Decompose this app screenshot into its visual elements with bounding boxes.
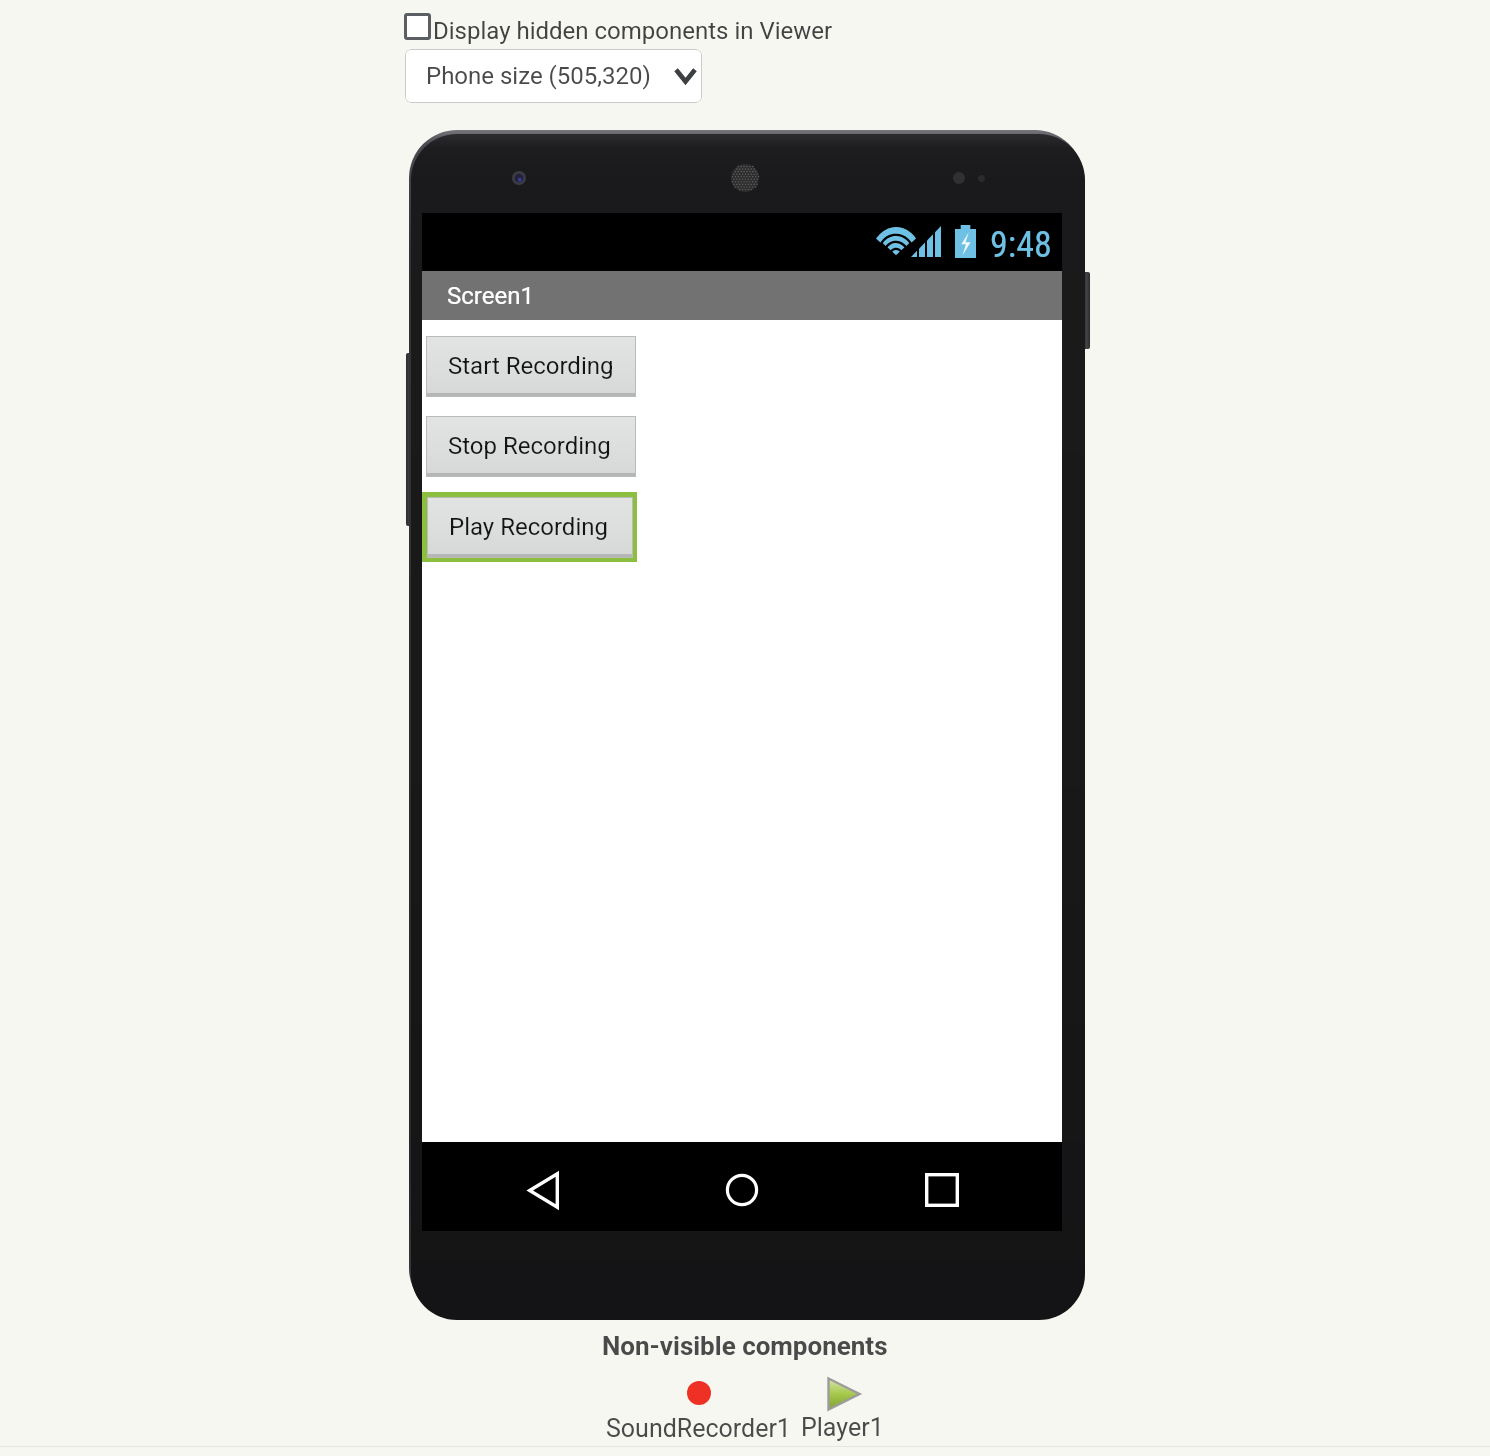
staticText: Player1	[801, 1413, 884, 1442]
button[interactable]: Back	[518, 1165, 568, 1215]
button[interactable]: Start Recording	[426, 336, 636, 397]
staticText: 9:48	[990, 224, 1052, 266]
button[interactable]: Phone size (505,320)	[405, 49, 702, 103]
button[interactable]: Stop Recording	[426, 416, 636, 477]
staticText: Phone size (505,320)	[426, 62, 651, 90]
staticText: Play Recording	[449, 513, 608, 541]
staticText: Display hidden components in Viewer	[433, 17, 833, 45]
button[interactable]: Play Recording	[427, 497, 633, 558]
other: Display hidden components in Viewer	[404, 13, 431, 40]
staticText: Non-visible components	[602, 1331, 888, 1361]
button[interactable]: Recent apps	[917, 1165, 967, 1215]
staticText: Stop Recording	[448, 432, 611, 460]
button[interactable]: SoundRecorder1	[606, 1381, 791, 1443]
staticText: Screen1	[447, 282, 534, 310]
button[interactable]: Home	[717, 1165, 767, 1215]
button[interactable]: Display hidden components in Viewer	[404, 13, 833, 45]
button[interactable]: Player1	[801, 1377, 884, 1442]
staticText: Start Recording	[448, 352, 614, 380]
staticText: SoundRecorder1	[606, 1414, 791, 1443]
